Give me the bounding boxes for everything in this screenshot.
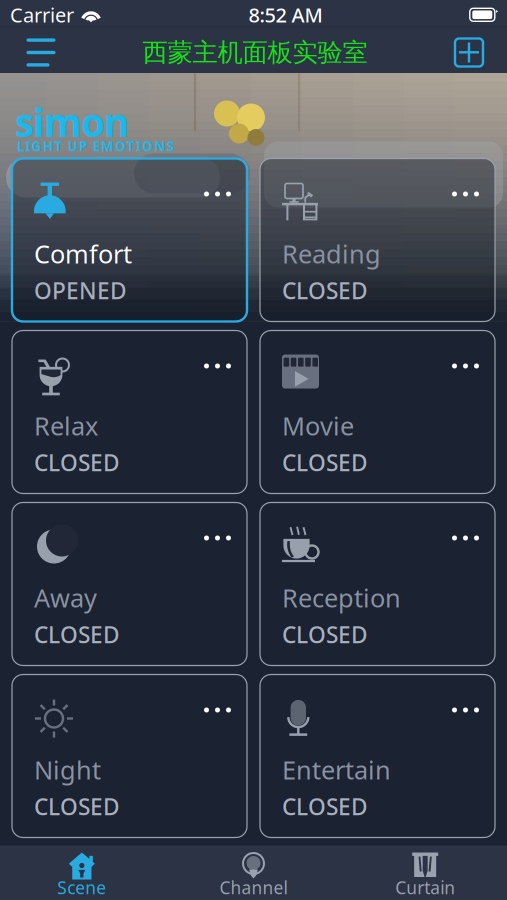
button[interactable]: Away xyxy=(12,502,247,665)
staticText: CLOSED xyxy=(282,791,368,821)
staticText: CLOSED xyxy=(34,791,120,821)
staticText: Movie xyxy=(282,409,354,442)
button[interactable]: Reading xyxy=(260,158,495,321)
staticText: Scene xyxy=(57,876,106,899)
button[interactable]: Night xyxy=(12,674,247,837)
staticText: CLOSED xyxy=(282,447,368,477)
button[interactable]: Add xyxy=(446,24,501,75)
button[interactable]: Entertain xyxy=(260,674,495,837)
button[interactable]: Movie xyxy=(260,330,495,493)
staticText: Night xyxy=(34,753,101,786)
button[interactable]: Relax xyxy=(12,330,247,493)
button[interactable]: Curtain xyxy=(339,845,507,900)
button[interactable]: Menu xyxy=(6,24,64,75)
staticText: 西蒙主机面板实验室 xyxy=(142,37,367,68)
staticText: Carrier xyxy=(10,1,74,28)
button[interactable]: Scene xyxy=(0,845,168,900)
staticText: CLOSED xyxy=(34,619,120,649)
staticText: Comfort xyxy=(34,237,132,270)
staticText: LIGHT UP EMOTIONS xyxy=(17,137,174,155)
button[interactable]: Channel xyxy=(168,845,339,900)
staticText: Relax xyxy=(34,409,98,442)
staticText: simon xyxy=(15,96,129,148)
staticText: Reading xyxy=(282,237,381,270)
staticText: Channel xyxy=(219,876,287,899)
staticText: Reception xyxy=(282,581,401,614)
staticText: CLOSED xyxy=(34,447,120,477)
staticText: CLOSED xyxy=(282,619,368,649)
button[interactable]: Comfort xyxy=(12,158,247,321)
button[interactable]: Reception xyxy=(260,502,495,665)
staticText: OPENED xyxy=(34,275,127,305)
staticText: CLOSED xyxy=(282,275,368,305)
staticText: 8:52 AM xyxy=(248,1,322,28)
staticText: Entertain xyxy=(282,753,391,786)
staticText: Curtain xyxy=(395,876,455,899)
staticText: Away xyxy=(34,581,97,614)
